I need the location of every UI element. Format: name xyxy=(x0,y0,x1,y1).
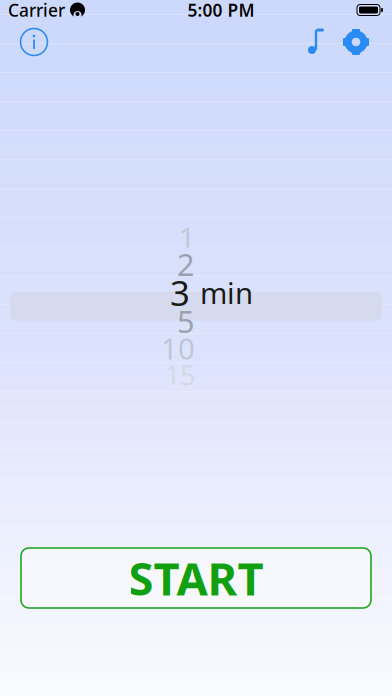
staticText: 10 xyxy=(161,328,195,367)
staticText: Carrier xyxy=(8,0,65,21)
staticText: 3 xyxy=(170,269,190,315)
button[interactable]: Info xyxy=(12,20,56,64)
staticText: 5:00 PM xyxy=(187,0,254,21)
button[interactable]: Sound xyxy=(290,20,334,64)
button[interactable]: Settings xyxy=(334,20,378,64)
staticText: START xyxy=(128,548,263,608)
staticText: 5 xyxy=(177,301,195,341)
staticText: min xyxy=(200,273,253,312)
button[interactable]: START xyxy=(21,548,371,608)
staticText: 1 xyxy=(179,218,195,256)
staticText: 2 xyxy=(177,244,195,284)
staticText: 15 xyxy=(165,357,195,393)
